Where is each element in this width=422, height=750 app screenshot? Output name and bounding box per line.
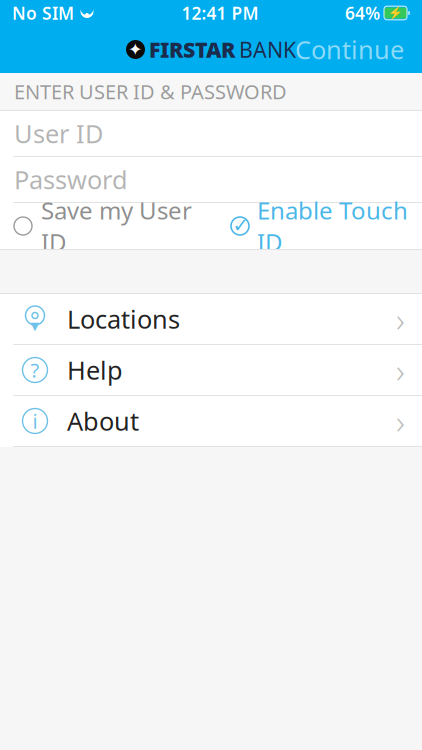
staticText: 64% bbox=[345, 1, 380, 24]
staticText: Locations bbox=[67, 302, 180, 336]
staticText: User ID bbox=[14, 117, 103, 150]
staticText: Save my User ID bbox=[41, 194, 192, 258]
staticText: ⚡ bbox=[388, 6, 403, 20]
button[interactable]: Save my User ID bbox=[14, 184, 192, 268]
staticText: ✓ bbox=[232, 214, 249, 236]
staticText: Enable Touch ID bbox=[257, 194, 408, 258]
staticText: i bbox=[32, 408, 37, 434]
button[interactable]: ✓ bbox=[230, 184, 408, 268]
staticText: ENTER USER ID & PASSWORD bbox=[14, 78, 287, 105]
staticText: › bbox=[396, 297, 405, 341]
button[interactable]: ? bbox=[0, 345, 422, 396]
button[interactable]: ▾ bbox=[0, 294, 422, 345]
staticText: About bbox=[67, 404, 139, 438]
staticText: ▾ bbox=[30, 316, 39, 335]
button[interactable]: i bbox=[0, 396, 422, 447]
staticText: › bbox=[396, 399, 405, 443]
staticText: Password bbox=[14, 163, 128, 196]
staticText: Help bbox=[67, 353, 123, 387]
staticText: ? bbox=[30, 357, 39, 383]
staticText: 12:41 PM bbox=[181, 1, 258, 24]
staticText: › bbox=[396, 348, 405, 392]
button[interactable]: Continue bbox=[283, 25, 416, 74]
staticText: BANK bbox=[239, 35, 296, 64]
staticText: ✦ bbox=[128, 40, 143, 59]
staticText: No SIM bbox=[12, 1, 74, 24]
staticText: Continue bbox=[295, 33, 404, 66]
staticText: FIRSTAR bbox=[149, 35, 235, 64]
